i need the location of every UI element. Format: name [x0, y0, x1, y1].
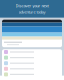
- staticText: Discover your next: [15, 3, 48, 8]
- staticText: adventure today: [18, 9, 45, 15]
